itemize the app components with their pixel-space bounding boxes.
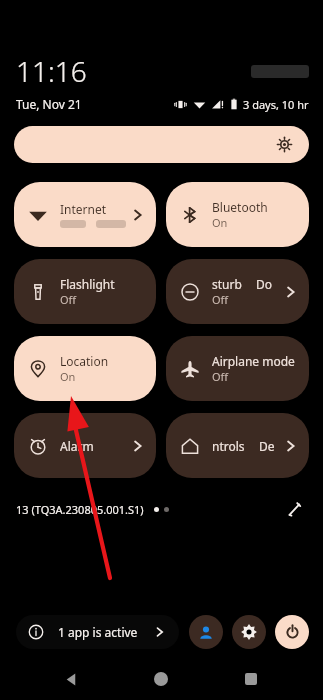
button[interactable]: Home [143, 662, 179, 696]
button[interactable]: Recents [233, 662, 269, 696]
staticText: Off [212, 369, 229, 384]
staticText: ntrols [212, 438, 245, 454]
staticText: Internet [60, 201, 107, 217]
button[interactable]: Internet [14, 182, 156, 247]
staticText: 13 (TQ3A.230805.001.S1) [16, 502, 144, 517]
button[interactable]: User [189, 615, 223, 649]
staticText: 3 days, 10 hr [243, 97, 309, 112]
staticText: sturb [212, 276, 242, 292]
staticText: Do [256, 276, 273, 292]
staticText: Alarm [60, 438, 94, 454]
button[interactable]: Location [14, 336, 156, 401]
staticText: 11:16 [16, 52, 87, 90]
staticText: Location [60, 353, 109, 369]
staticText: Off [60, 292, 77, 307]
button[interactable]: 1 app is active [16, 615, 179, 649]
button[interactable]: Airplane mode [166, 336, 309, 401]
button[interactable]: Power [275, 615, 309, 649]
button[interactable]: Edit tiles [281, 496, 307, 522]
staticText: De [259, 438, 275, 454]
button[interactable]: Settings [232, 615, 266, 649]
staticText: On [60, 369, 76, 384]
button[interactable]: ntrols [166, 413, 309, 478]
button[interactable]: Bluetooth [166, 182, 309, 247]
staticText: Bluetooth [212, 199, 268, 215]
staticText: Airplane mode [212, 353, 295, 369]
staticText: On [212, 215, 228, 230]
staticText: Flashlight [60, 276, 115, 292]
button[interactable]: Brightness [14, 126, 309, 163]
staticText: Off [212, 292, 229, 307]
button[interactable]: sturb [166, 259, 309, 324]
button[interactable]: Flashlight [14, 259, 156, 324]
staticText: 1 app is active [58, 624, 138, 640]
staticText: Tue, Nov 21 [16, 96, 82, 112]
button[interactable]: Alarm [14, 413, 156, 478]
button[interactable]: Back [53, 662, 89, 696]
